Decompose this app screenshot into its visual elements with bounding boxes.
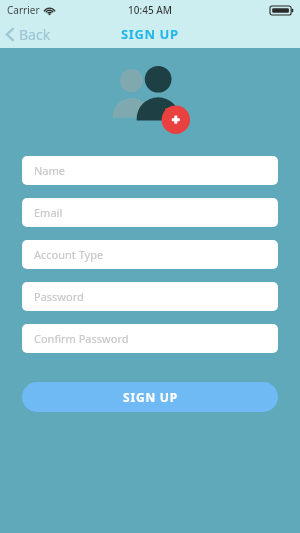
- staticText: Password: [34, 289, 84, 304]
- staticText: SIGN UP: [123, 389, 178, 405]
- staticText: Back: [19, 25, 51, 44]
- button[interactable]: SIGN UP: [22, 382, 278, 412]
- staticText: Name: [34, 163, 66, 178]
- button[interactable]: Account Type: [22, 240, 278, 269]
- button[interactable]: Back: [0, 20, 61, 48]
- button[interactable]: Password: [22, 282, 278, 311]
- staticText: Email: [34, 205, 63, 220]
- staticText: 10:45 AM: [128, 3, 172, 17]
- staticText: Confirm Password: [34, 331, 129, 346]
- staticText: Carrier: [7, 3, 40, 17]
- button[interactable]: Confirm Password: [22, 324, 278, 353]
- staticText: SIGN UP: [121, 25, 179, 43]
- button[interactable]: Name: [22, 156, 278, 185]
- button[interactable]: Email: [22, 198, 278, 227]
- staticText: Account Type: [34, 247, 104, 262]
